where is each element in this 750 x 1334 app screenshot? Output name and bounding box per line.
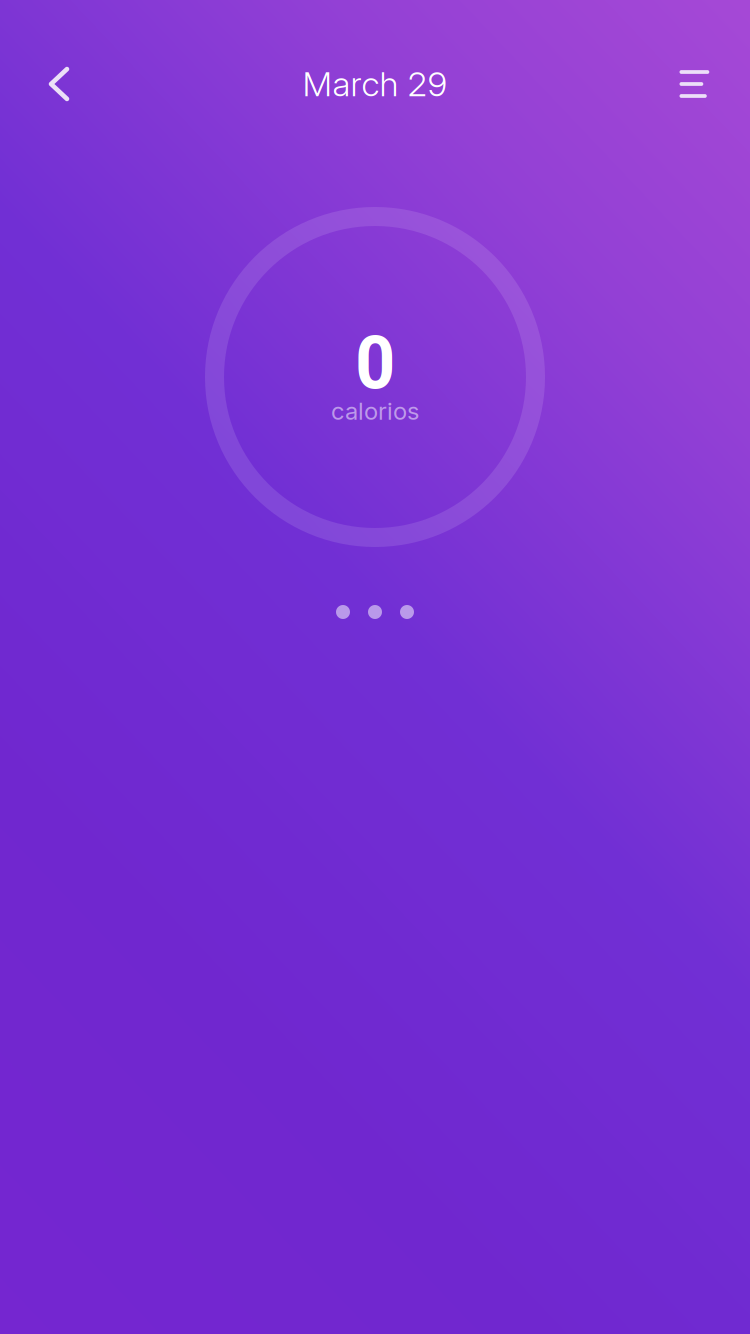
staticText: calorios [331,396,419,425]
button[interactable]: Page 3 [400,605,414,619]
staticText: 0 [355,320,395,406]
button[interactable]: Menu [654,45,736,123]
staticText: March 29 [302,63,447,104]
button[interactable]: Page 2 [368,605,382,619]
button[interactable]: Page 1 [336,605,350,619]
button[interactable]: Back [18,45,100,123]
